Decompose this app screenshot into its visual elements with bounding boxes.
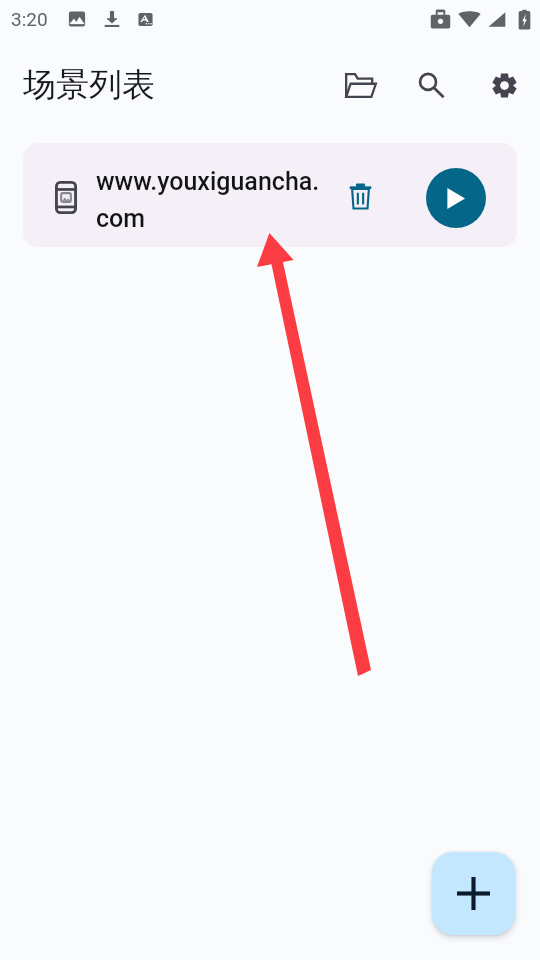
button[interactable]: Play <box>426 168 486 228</box>
button[interactable]: Open folder <box>337 61 385 109</box>
button[interactable]: Settings <box>480 61 528 109</box>
button[interactable]: Delete <box>338 174 382 218</box>
button[interactable]: Search <box>407 61 455 109</box>
staticText: 3:20 <box>11 8 48 30</box>
staticText: 场景列表 <box>23 64 155 106</box>
button[interactable]: Add scene <box>432 852 515 935</box>
button[interactable]: www.youxiguancha.com <box>23 143 517 247</box>
staticText: www.youxiguancha.com <box>96 167 326 233</box>
